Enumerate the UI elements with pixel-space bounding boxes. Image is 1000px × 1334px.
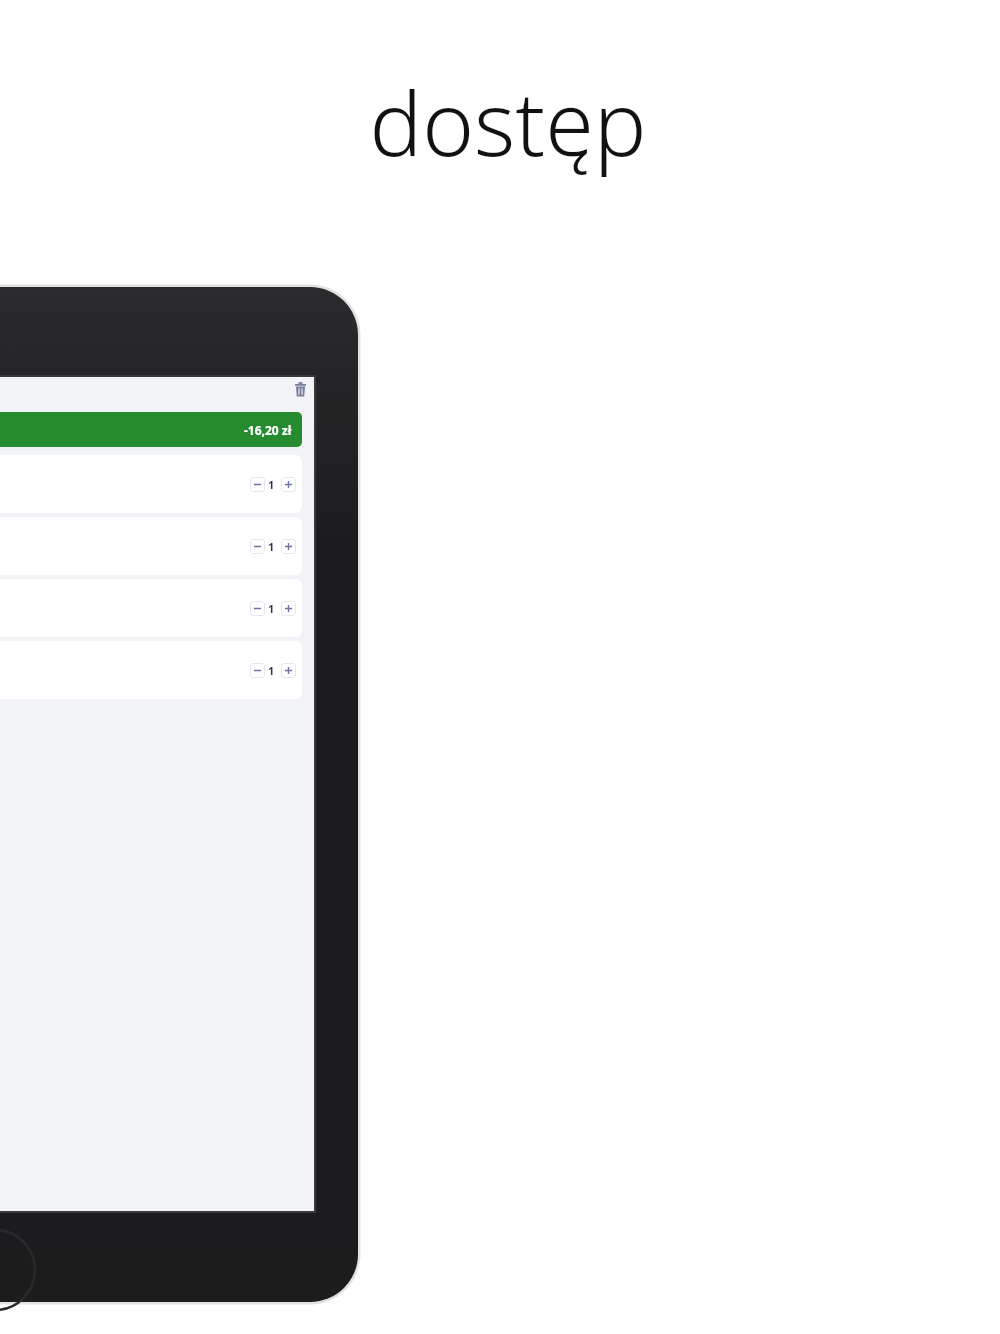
button[interactable]: [0, 517, 302, 575]
button[interactable]: Zwiększ ilość: [281, 663, 296, 678]
button[interactable]: Zmniejsz ilość: [250, 601, 265, 616]
button[interactable]: [0, 455, 302, 513]
button[interactable]: Zwiększ ilość: [281, 539, 296, 554]
button[interactable]: Zmniejsz ilość: [250, 477, 265, 492]
button[interactable]: Wyczyść koszyk: [288, 379, 314, 405]
button[interactable]: -16,20 zł: [0, 412, 302, 447]
staticText: 1: [268, 539, 275, 554]
button[interactable]: Zmniejsz ilość: [250, 539, 265, 554]
button[interactable]: Zwiększ ilość: [281, 601, 296, 616]
staticText: 1: [268, 601, 275, 616]
button[interactable]: [0, 579, 302, 637]
staticText: 1: [268, 477, 275, 492]
button[interactable]: [0, 641, 302, 699]
button[interactable]: Zmniejsz ilość: [250, 663, 265, 678]
staticText: -16,20 zł: [244, 422, 292, 438]
button[interactable]: Zwiększ ilość: [281, 477, 296, 492]
staticText: dostęp: [369, 62, 647, 178]
staticText: 1: [268, 663, 275, 678]
